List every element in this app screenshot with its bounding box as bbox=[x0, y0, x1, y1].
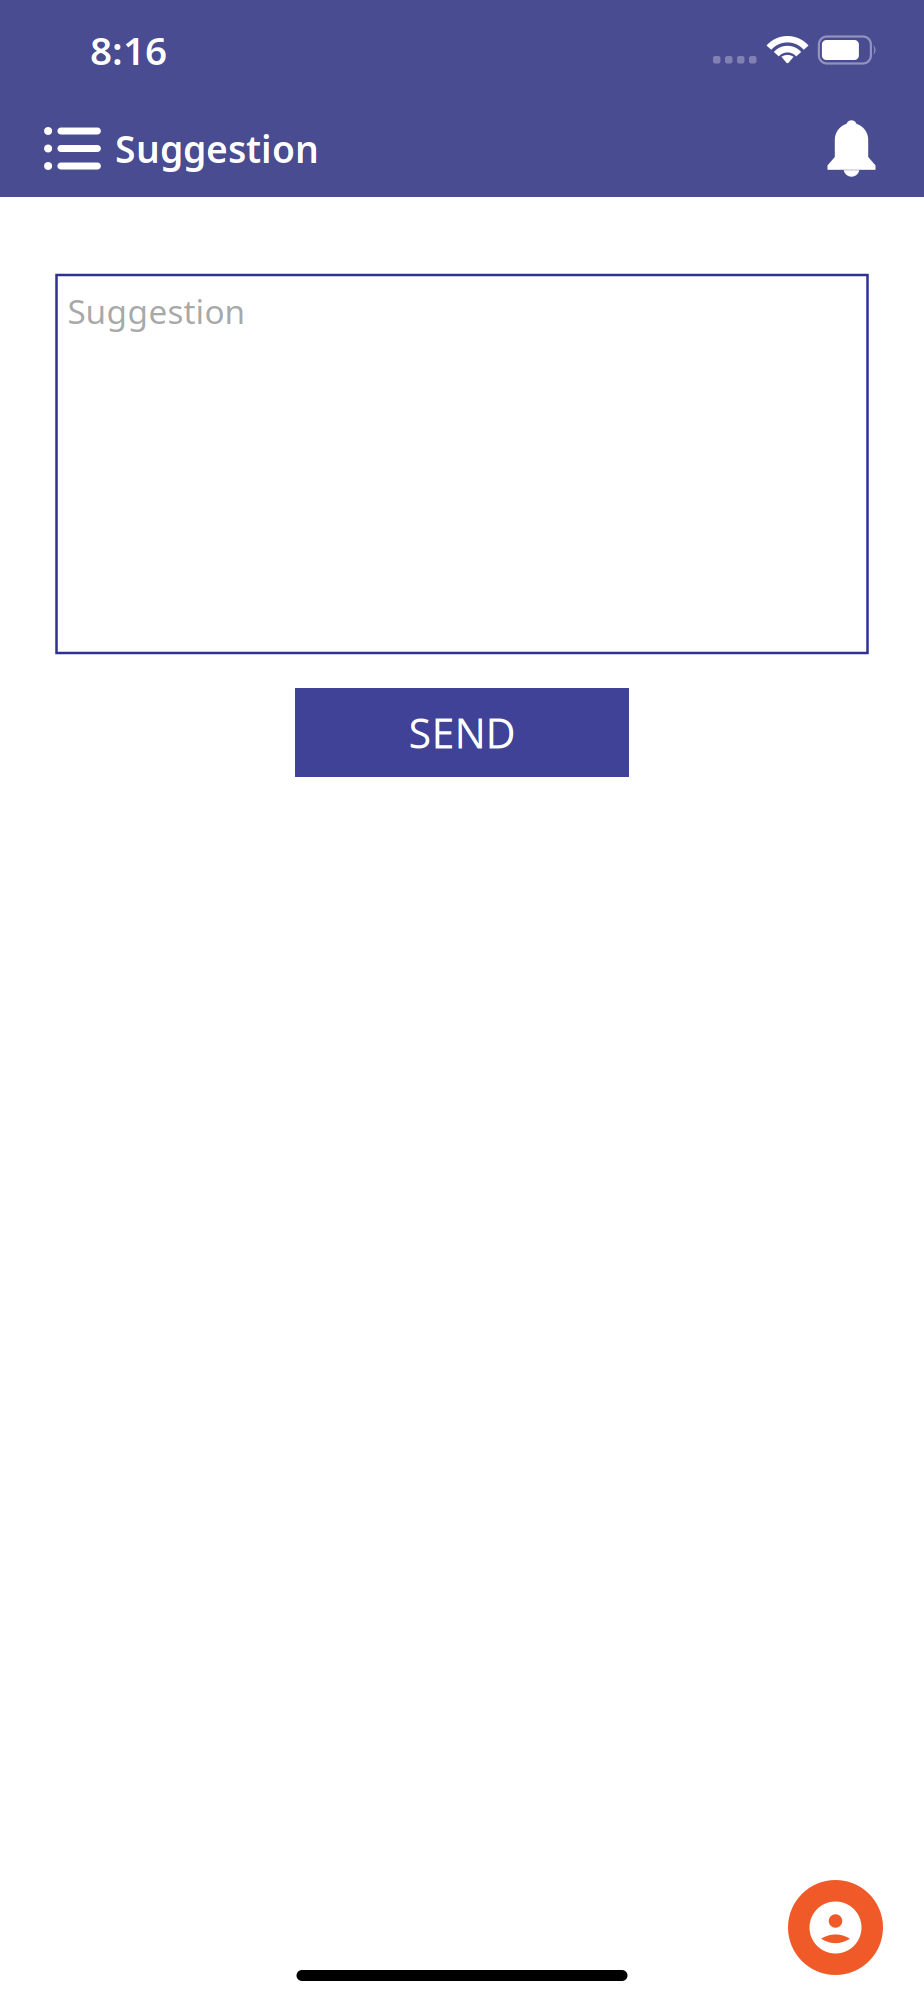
staticText: Suggestion bbox=[67, 289, 245, 333]
staticText: SEND bbox=[408, 705, 515, 760]
button[interactable]: Suggestion bbox=[56, 275, 867, 653]
button[interactable]: Profile bbox=[788, 1880, 883, 1975]
button[interactable]: Menu bbox=[0, 100, 115, 197]
staticText: 8:16 bbox=[90, 24, 167, 76]
button[interactable]: SEND bbox=[295, 688, 629, 777]
staticText: Suggestion bbox=[115, 124, 319, 173]
button[interactable]: Notifications bbox=[827, 100, 924, 197]
